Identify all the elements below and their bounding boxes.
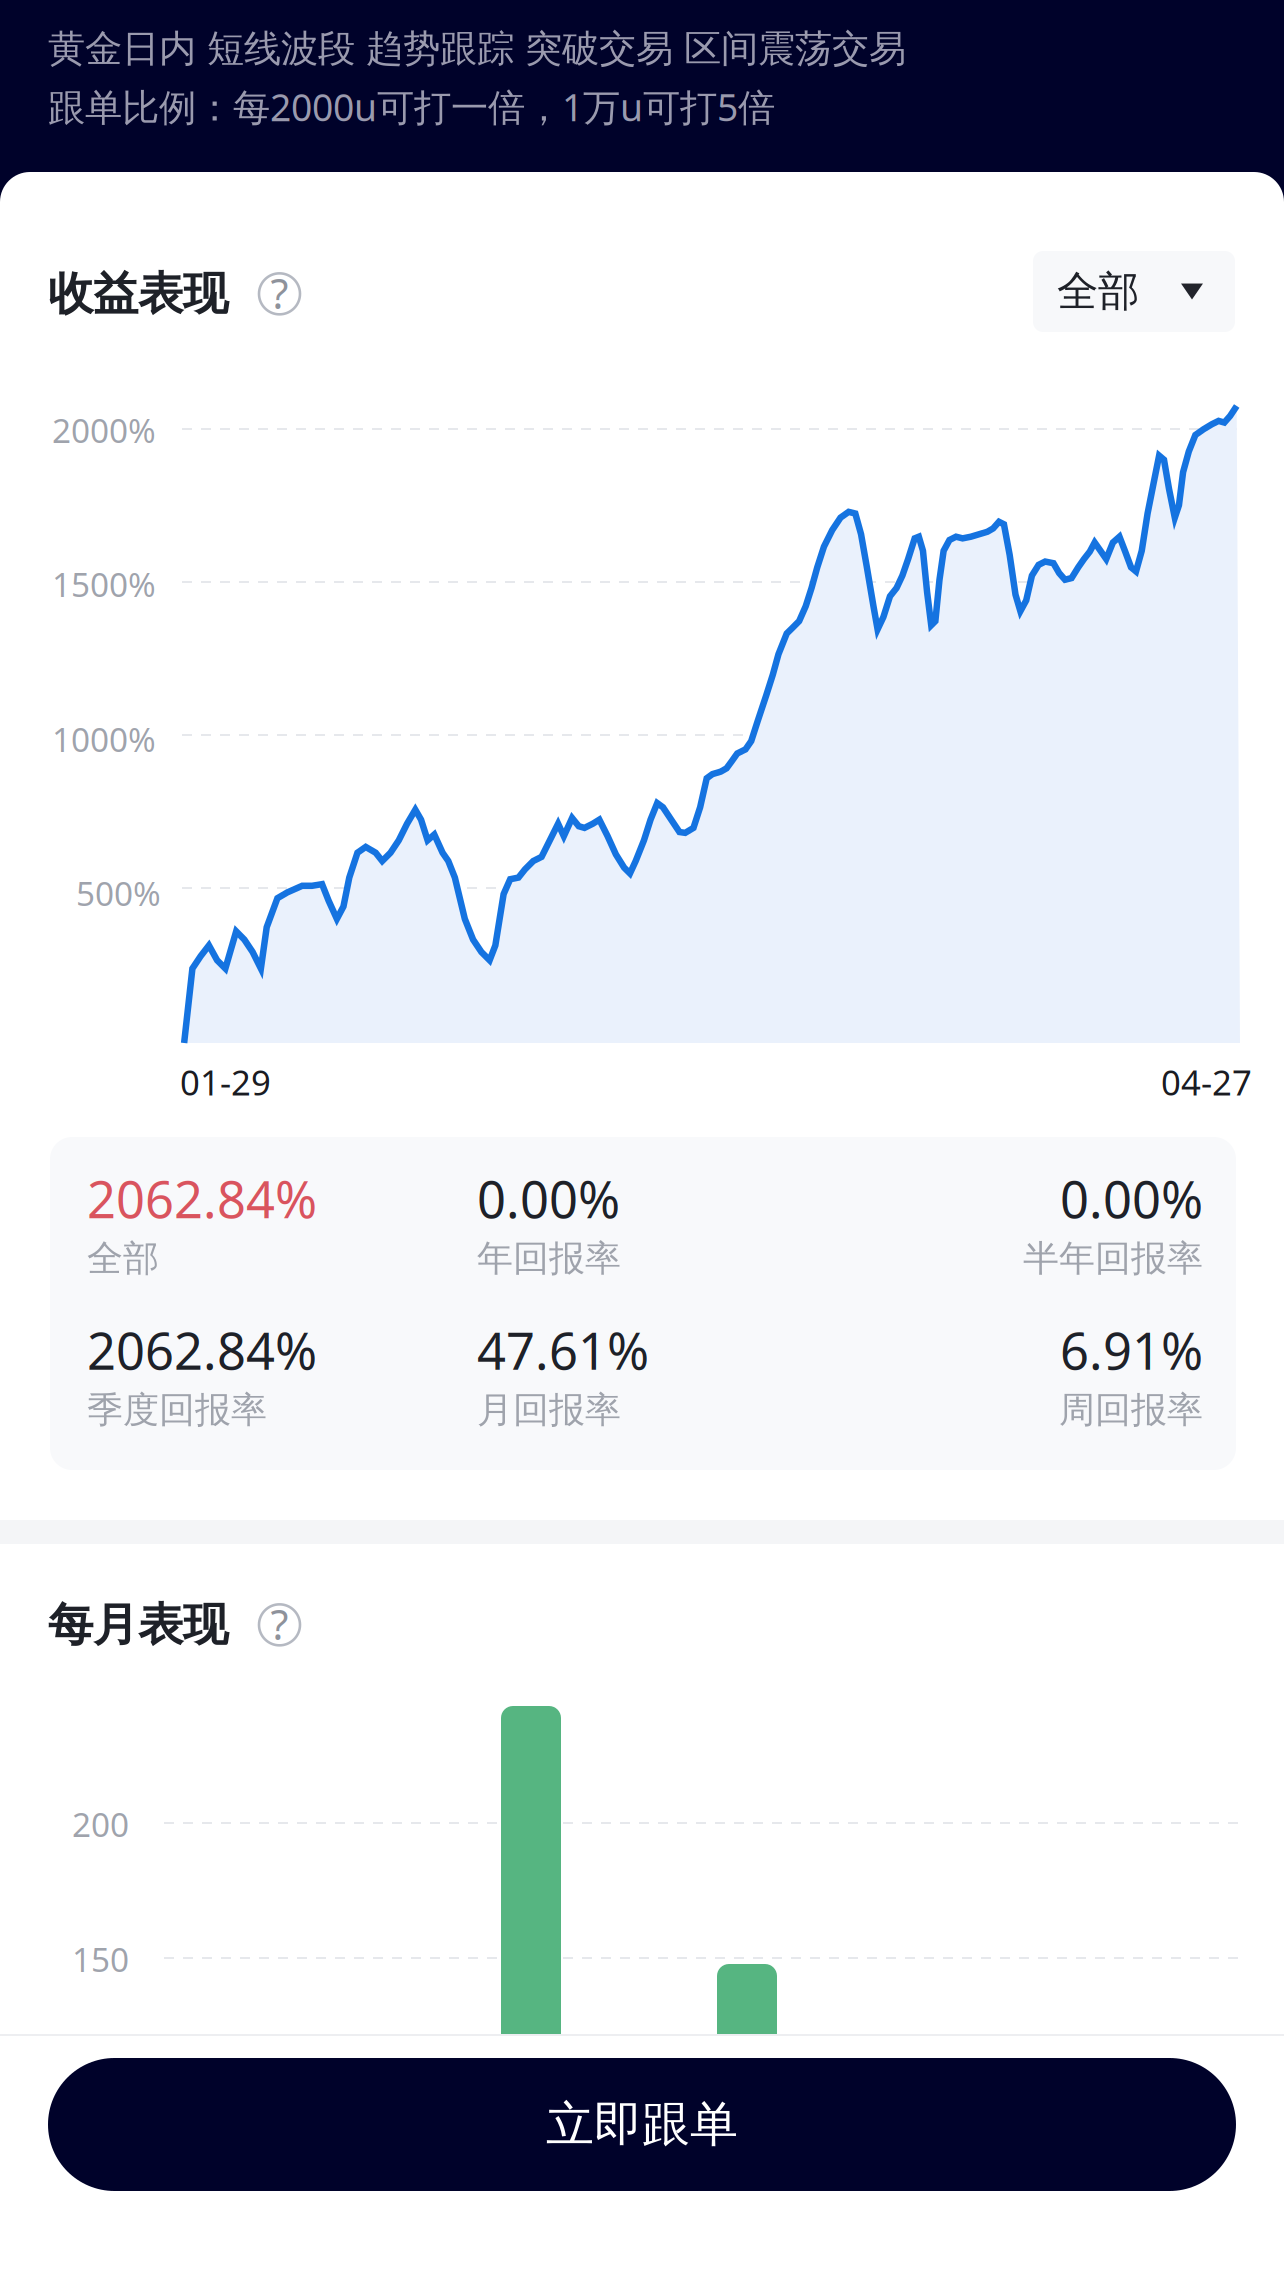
staticText: 2062.84% bbox=[87, 1316, 317, 1384]
staticText: 周回报率 bbox=[1059, 1388, 1203, 1432]
staticText: 1000% bbox=[52, 717, 156, 761]
staticText: 0.00% bbox=[477, 1165, 620, 1232]
button[interactable]: 全部 bbox=[1033, 251, 1235, 332]
staticText: ? bbox=[270, 265, 288, 320]
button[interactable]: 立即跟单 bbox=[48, 2058, 1236, 2191]
staticText: 跟单比例：每2000u可打一倍，1万u可打5倍 bbox=[48, 82, 775, 131]
staticText: 黄金日内 短线波段 趋势跟踪 突破交易 区间震荡交易 bbox=[48, 26, 906, 72]
staticText: 150 bbox=[72, 1937, 129, 1981]
staticText: 立即跟单 bbox=[546, 2095, 738, 2154]
staticText: 收益表现 bbox=[48, 266, 228, 322]
staticText: 200 bbox=[72, 1802, 129, 1846]
staticText: 全部 bbox=[87, 1236, 159, 1280]
staticText: ? bbox=[270, 1596, 288, 1651]
staticText: 每月表现 bbox=[48, 1597, 228, 1653]
staticText: 2000% bbox=[52, 408, 156, 452]
staticText: 全部 bbox=[1057, 266, 1139, 317]
staticText: 01-29 bbox=[180, 1059, 271, 1105]
staticText: 6.91% bbox=[1060, 1316, 1203, 1384]
staticText: 04-27 bbox=[1161, 1059, 1252, 1105]
staticText: 1500% bbox=[52, 562, 156, 606]
staticText: 月回报率 bbox=[477, 1388, 621, 1432]
staticText: 2062.84% bbox=[87, 1165, 317, 1232]
staticText: 500% bbox=[76, 871, 161, 915]
staticText: 季度回报率 bbox=[87, 1388, 267, 1432]
staticText: 47.61% bbox=[477, 1316, 649, 1384]
button[interactable]: 关于每月表现 bbox=[259, 1604, 300, 1645]
staticText: 年回报率 bbox=[477, 1236, 621, 1280]
staticText: 半年回报率 bbox=[1023, 1236, 1203, 1280]
staticText: 0.00% bbox=[1060, 1165, 1203, 1232]
button[interactable]: 关于收益表现 bbox=[259, 273, 300, 314]
